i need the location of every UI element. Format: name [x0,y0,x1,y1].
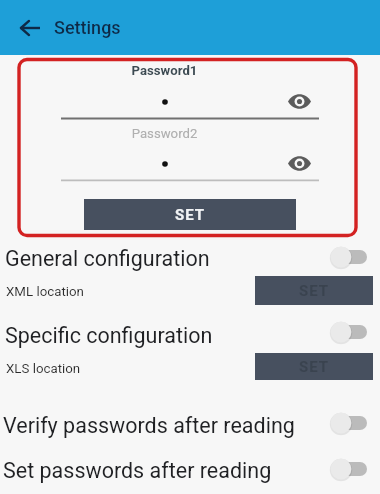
staticText: Settings [54,17,121,38]
button[interactable]: Verify passwords after reading toggle [330,411,368,435]
button[interactable]: Set passwords after reading toggle [330,457,368,481]
staticText: Set passwords after reading [3,458,272,483]
button[interactable]: Show password [286,153,312,173]
staticText: XLS location [6,361,81,377]
button[interactable]: Set passwords after reading [0,455,380,485]
button[interactable]: Specific configuration toggle [330,320,368,344]
staticText: XML location [6,284,84,300]
staticText: SET [299,358,330,376]
button[interactable]: Show password [286,91,312,111]
staticText: SET [175,206,206,224]
button[interactable]: Verify passwords after reading [0,410,380,440]
staticText: Password1 [61,63,268,78]
staticText: SET [299,282,330,300]
staticText: General configuration [5,246,210,271]
button[interactable]: Back [14,12,46,44]
button[interactable]: SET [84,199,296,230]
staticText: Password2 [61,126,268,141]
staticText: Specific configuration [5,323,213,348]
button[interactable]: General configuration toggle [330,245,368,269]
staticText: Verify passwords after reading [3,413,295,438]
